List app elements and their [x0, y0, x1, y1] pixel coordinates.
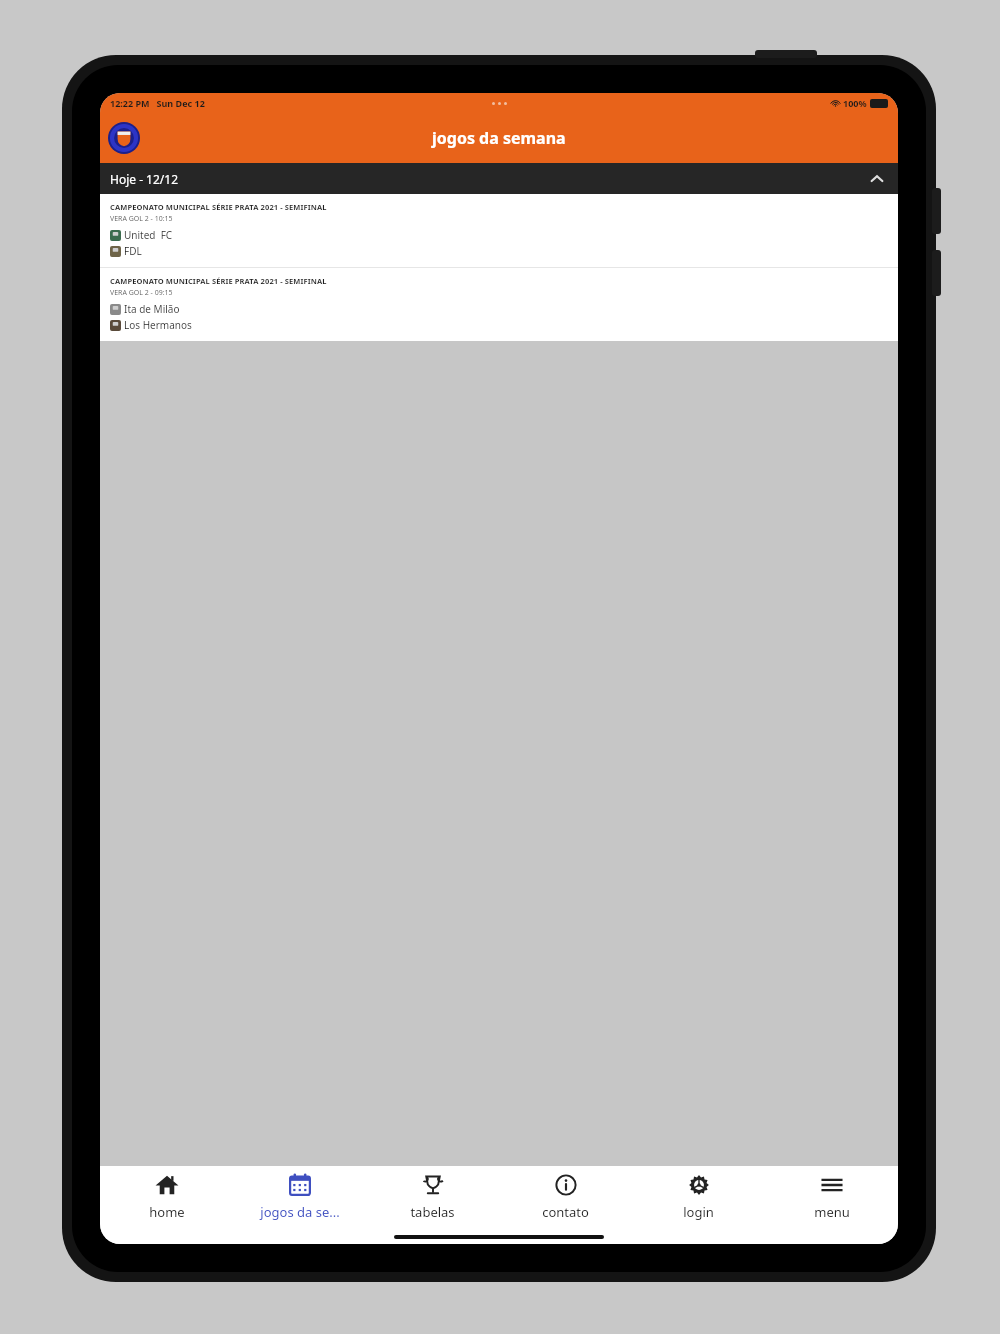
staticText: jogos da se... — [260, 1203, 340, 1221]
button[interactable]: CAMPEONATO MUNICIPAL SÉRIE PRATA 2021 - … — [100, 194, 898, 267]
staticText: CAMPEONATO MUNICIPAL SÉRIE PRATA 2021 - … — [110, 276, 327, 286]
staticText: Ita de Milão — [124, 302, 180, 316]
staticText: VERA GOL 2 - 10:15 — [110, 214, 173, 224]
staticText: login — [683, 1203, 714, 1221]
button[interactable]: Logo do clube — [106, 120, 142, 156]
staticText: 12:22 PM Sun Dec 12 — [110, 97, 205, 109]
button[interactable]: tabelas — [366, 1166, 499, 1230]
button[interactable]: CAMPEONATO MUNICIPAL SÉRIE PRATA 2021 - … — [100, 268, 898, 341]
staticText: jogos da semana — [432, 127, 566, 149]
staticText: home — [149, 1203, 185, 1221]
button[interactable]: contato — [499, 1166, 632, 1230]
staticText: Hoje - 12/12 — [110, 171, 179, 187]
button[interactable]: home — [100, 1166, 233, 1230]
staticText: FDL — [124, 244, 142, 258]
button[interactable]: login — [632, 1166, 765, 1230]
staticText: United FC — [124, 228, 173, 242]
staticText: Los Hermanos — [124, 318, 192, 332]
staticText: CAMPEONATO MUNICIPAL SÉRIE PRATA 2021 - … — [110, 202, 327, 212]
staticText: VERA GOL 2 - 09:15 — [110, 288, 173, 298]
staticText: menu — [814, 1203, 850, 1221]
button[interactable]: menu — [765, 1166, 898, 1230]
button[interactable]: jogos da se... — [233, 1166, 366, 1230]
staticText: 100% — [843, 97, 867, 109]
staticText: tabelas — [410, 1203, 455, 1221]
staticText: contato — [542, 1203, 589, 1221]
button[interactable]: Hoje - 12/12 — [100, 163, 898, 194]
